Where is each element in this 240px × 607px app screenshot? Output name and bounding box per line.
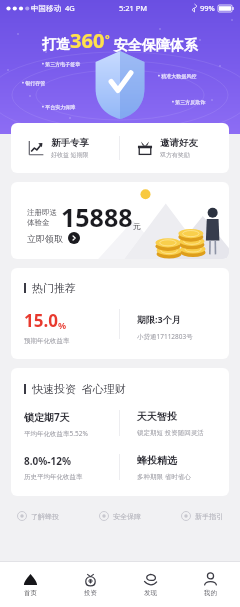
staticText: 中国移动 (31, 4, 61, 13)
button[interactable]: 8.0%-12% (24, 454, 216, 481)
staticText: 首页 (24, 589, 37, 597)
staticText: % (58, 319, 67, 331)
other: 立即领取 (68, 232, 80, 244)
button[interactable]: 注册即送 (11, 182, 229, 259)
staticText: ° (105, 31, 110, 46)
staticText: 历史平均年化收益率 (24, 473, 83, 481)
staticText: 快速投资 省心理财 (32, 381, 126, 396)
staticText: 锁定期7天 (24, 410, 70, 424)
staticText: 平均年化收益率5.52% (24, 429, 88, 438)
button[interactable]: 新手专享 (11, 123, 119, 173)
staticText: • 第三方反欺诈 (172, 99, 206, 106)
staticText: 体验金 (27, 218, 50, 227)
button[interactable]: 热门推荐 (11, 268, 229, 359)
staticText: 打造 (42, 36, 70, 54)
staticText: • 平台实力保障 (42, 104, 76, 111)
button[interactable]: 安全保障 (99, 511, 141, 521)
staticText: 360 (70, 27, 105, 54)
staticText: 了解蜂投 (31, 512, 59, 521)
button[interactable]: 锁定期7天 (24, 410, 216, 438)
staticText: 投资 (84, 589, 97, 597)
staticText: 4G (65, 3, 75, 13)
staticText: 双方有奖励 (160, 151, 190, 159)
button[interactable]: 发现 (120, 562, 180, 607)
button[interactable]: 新手指引 (181, 511, 223, 521)
staticText: 多种期限 省时省心 (137, 472, 191, 481)
staticText: 15.0 (24, 309, 58, 332)
staticText: 预期年化收益率 (24, 337, 70, 345)
staticText: 安全保障 (113, 512, 141, 521)
staticText: • 第三方电子签章 (42, 61, 81, 68)
staticText: 99% (200, 3, 215, 13)
staticText: 立即领取 (27, 233, 63, 244)
staticText: 15888 (61, 200, 133, 234)
button[interactable]: 了解蜂投 (17, 511, 59, 521)
staticText: 元 (133, 221, 141, 231)
staticText: 小贷通17112803号 (137, 332, 193, 341)
staticText: 蜂投精选 (137, 454, 177, 467)
button[interactable]: 首页 (0, 562, 60, 607)
button[interactable]: 邀请好友 (120, 123, 229, 173)
staticText: 8.0%-12% (24, 454, 71, 468)
staticText: 注册即送 (27, 208, 57, 217)
staticText: 好收益 短期限 (51, 151, 89, 159)
staticText: • 精准大数据风控 (158, 73, 197, 80)
staticText: 5:21 PM (119, 3, 148, 13)
staticText: • 银行存管 (22, 80, 46, 87)
staticText: 我的 (204, 589, 217, 597)
staticText: 新手指引 (195, 512, 223, 521)
staticText: 锁定期短 投资随回灵活 (137, 428, 204, 437)
staticText: 邀请好友 (160, 137, 198, 149)
staticText: 安全保障体系 (110, 35, 198, 54)
staticText: 发现 (144, 589, 157, 597)
button[interactable]: 投资 (60, 562, 120, 607)
staticText: 新手专享 (51, 137, 89, 149)
staticText: 天天智投 (137, 410, 177, 423)
staticText: 热门推荐 (32, 281, 76, 295)
button[interactable]: 我的 (180, 562, 240, 607)
staticText: 期限:3个月 (137, 313, 181, 325)
